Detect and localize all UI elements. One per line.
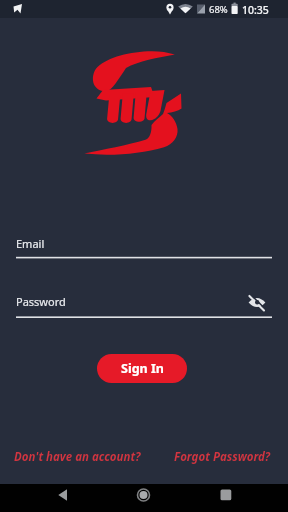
button[interactable]: Email — [16, 234, 272, 260]
staticText: Don't have an account? — [14, 449, 141, 465]
staticText: Email — [16, 236, 45, 251]
staticText: Forgot Password? — [174, 449, 271, 465]
staticText: 68% — [209, 3, 228, 16]
staticText: 10:35 — [242, 3, 269, 17]
button[interactable]: Forgot Password? — [170, 444, 267, 460]
button[interactable]: Sign In — [97, 354, 187, 383]
staticText: Sign In — [121, 360, 164, 377]
button[interactable] — [50, 484, 78, 512]
button[interactable] — [130, 484, 158, 512]
button[interactable] — [212, 484, 240, 512]
button[interactable]: Password — [16, 292, 272, 318]
staticText: Password — [16, 294, 66, 309]
button[interactable]: Don't have an account? — [10, 444, 137, 460]
button[interactable] — [245, 292, 269, 316]
